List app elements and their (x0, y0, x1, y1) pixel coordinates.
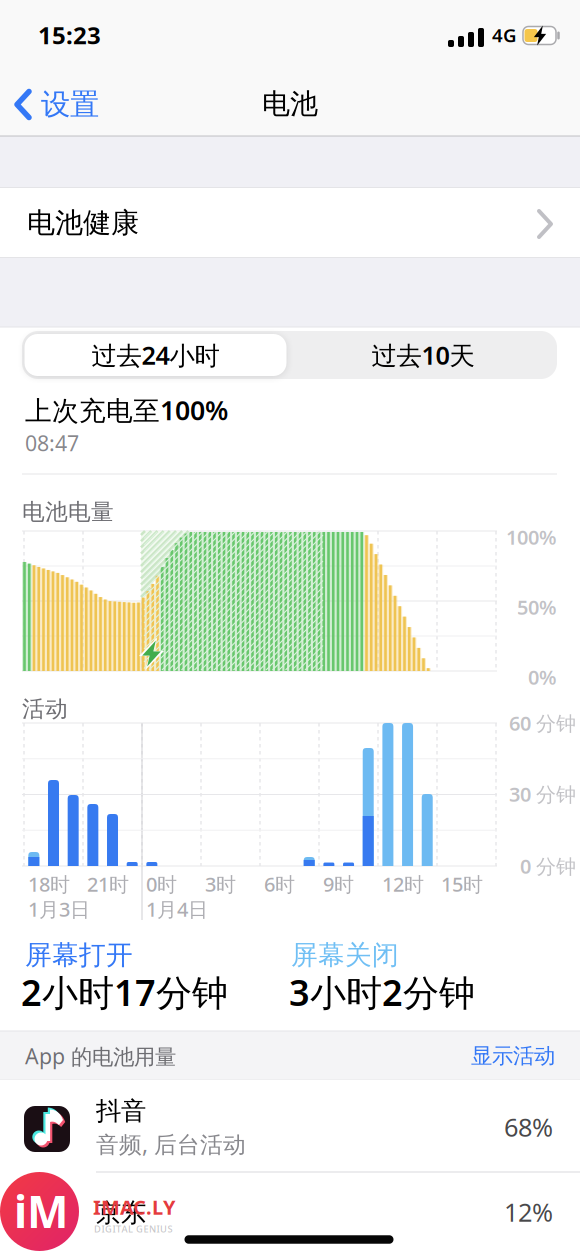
staticText (133, 1223, 135, 1235)
staticText: 50% (517, 594, 557, 620)
staticText: 6时 (264, 871, 295, 897)
staticText: E (143, 1223, 148, 1235)
staticText: 3时 (205, 871, 236, 897)
staticText: T (116, 1223, 121, 1235)
staticText: 京东 (96, 1197, 146, 1228)
button[interactable]: 显示活动 (471, 1043, 555, 1069)
staticText: 设置 (41, 86, 99, 122)
button[interactable]: 京东 (0, 1172, 580, 1256)
staticText: I (156, 1223, 159, 1235)
button[interactable]: 抖音 (0, 1080, 580, 1172)
staticText: IMAC.LY (93, 1194, 176, 1220)
staticText: 音频, 后台活动 (96, 1129, 246, 1159)
staticText: 30 分钟 (509, 781, 576, 807)
staticText: 68% (504, 1110, 553, 1144)
staticText: 0时 (146, 871, 177, 897)
staticText: 100% (506, 524, 557, 550)
staticText: U (160, 1223, 167, 1235)
staticText: 过去10天 (371, 338, 474, 372)
staticText: 1月3日 (28, 896, 90, 922)
staticText: 0 分钟 (520, 853, 576, 879)
staticText: N (149, 1223, 156, 1235)
staticText: I (112, 1223, 115, 1235)
staticText: G (105, 1223, 112, 1235)
staticText: 电池健康 (27, 206, 139, 240)
staticText: 电池 (262, 87, 318, 121)
staticText: A (121, 1223, 127, 1235)
staticText: I (101, 1223, 104, 1235)
staticText: 3小时2分钟 (289, 968, 475, 1016)
staticText: 2小时17分钟 (21, 968, 228, 1016)
staticText: 12% (504, 1195, 553, 1229)
button[interactable]: 过去10天 (292, 334, 554, 376)
staticText: iM (14, 1182, 68, 1240)
staticText: 12时 (382, 871, 424, 897)
staticText: 上次充电至100% (25, 392, 228, 428)
button[interactable]: 返回设置 (14, 82, 154, 126)
staticText: 21时 (87, 871, 129, 897)
staticText: 显示活动 (471, 1043, 555, 1069)
staticText: 60 分钟 (509, 710, 576, 736)
staticText: 屏幕关闭 (291, 939, 399, 971)
staticText: L (128, 1223, 133, 1235)
staticText: 15时 (441, 871, 483, 897)
staticText: 1月4日 (146, 896, 208, 922)
button[interactable]: 过去24小时 (24, 334, 286, 376)
staticText: 4G (492, 23, 517, 47)
staticText: 0% (528, 664, 557, 690)
staticText: 电池电量 (22, 498, 114, 526)
staticText: S (167, 1223, 172, 1235)
staticText: 过去24小时 (91, 338, 219, 372)
staticText: 9时 (323, 871, 354, 897)
staticText: D (94, 1223, 101, 1235)
staticText: G (136, 1223, 143, 1235)
button[interactable]: 电池健康 (0, 188, 580, 257)
staticText: 屏幕打开 (25, 939, 133, 971)
staticText: 08:47 (25, 429, 79, 457)
staticText: 15:23 (38, 19, 101, 51)
staticText: 活动 (22, 695, 68, 723)
staticText: 18时 (28, 871, 70, 897)
staticText: App 的电池用量 (25, 1042, 176, 1070)
staticText: 抖音 (96, 1095, 146, 1126)
